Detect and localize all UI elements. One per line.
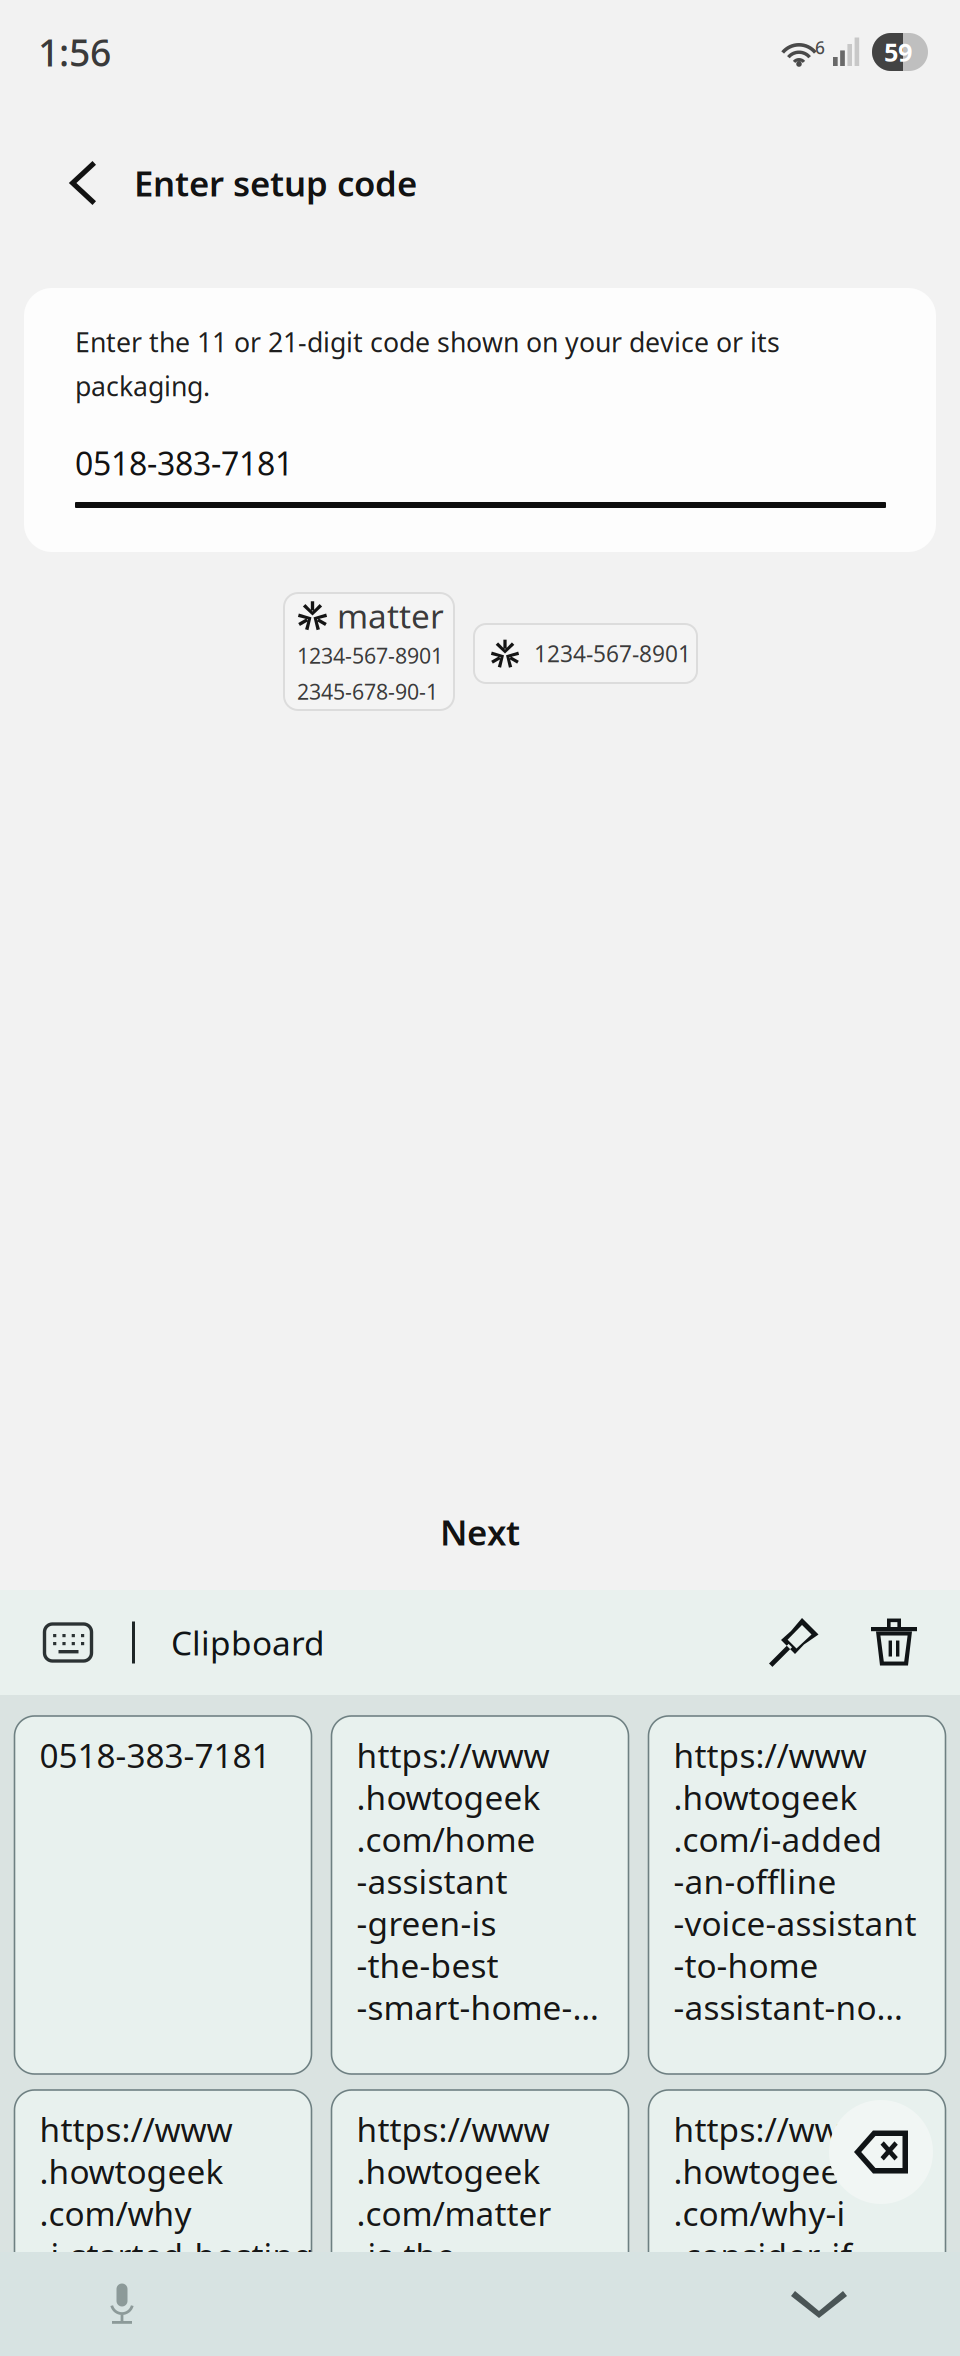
button[interactable]: 0518-383-7181 — [14, 1716, 311, 2074]
staticText: Enter the 11 or 21-digit code shown on y… — [75, 324, 780, 360]
button[interactable]: https://www — [14, 2090, 311, 2356]
staticText: -smart-home — [39, 2317, 244, 2356]
staticText: .howtogeek — [673, 2149, 857, 2193]
staticText: 0518-383-7181 — [39, 1733, 270, 1777]
button[interactable]: Back — [0, 128, 134, 238]
staticText: https://www — [673, 1733, 866, 1777]
button[interactable]: Hide keyboard — [792, 2285, 848, 2323]
staticText: .howtogeek — [673, 1775, 857, 1819]
staticText: .com/why-i — [673, 2191, 845, 2235]
staticText: .howtogeek — [39, 2149, 223, 2193]
button[interactable]: https://www — [331, 2090, 628, 2356]
staticText: 2345-678-90-1 — [297, 677, 438, 706]
button[interactable]: https://www — [648, 2090, 945, 2356]
button[interactable]: Next — [0, 1482, 960, 1582]
staticText: https://www — [39, 2107, 232, 2151]
staticText: 59 — [884, 35, 912, 69]
button[interactable]: Delete — [870, 1617, 918, 1667]
staticText: -to-home — [673, 1943, 818, 1987]
button[interactable]: https://www — [331, 1716, 628, 2074]
staticText: packaging. — [75, 368, 210, 404]
staticText: https://www — [673, 2107, 866, 2151]
staticText: .howtogeek — [356, 1775, 540, 1819]
staticText: -consider-if — [673, 2233, 851, 2277]
staticText: .com/why — [39, 2191, 191, 2235]
staticText: .com/home — [356, 1817, 535, 1861]
staticText: -green-is — [356, 1901, 496, 1945]
staticText: .com/matter — [356, 2191, 551, 2235]
staticText: Next — [440, 1509, 520, 1555]
staticText: -voice-assistant — [673, 1901, 916, 1945]
staticText: https://www — [356, 2107, 549, 2151]
staticText: 0518-383-7181 — [75, 442, 293, 484]
button[interactable]: Keyboard — [42, 1621, 94, 1663]
staticText: Clipboard — [171, 1620, 325, 1665]
staticText: -the-best — [356, 1943, 498, 1987]
staticText: 1234-567-8901 — [297, 641, 443, 670]
staticText: -i-started-hosting — [39, 2233, 314, 2277]
staticText: -assistant — [356, 1859, 507, 1903]
button[interactable]: Voice input — [104, 2282, 140, 2326]
staticText: 1234-567-8901 — [534, 638, 691, 668]
staticText: .howtogeek — [356, 2149, 540, 2193]
button[interactable]: Pin — [768, 1616, 820, 1668]
staticText: -is-the — [356, 2233, 455, 2277]
staticText: Enter setup code — [134, 160, 417, 206]
staticText: -an-offline — [673, 1859, 836, 1903]
staticText: -a-device — [673, 2275, 814, 2319]
staticText: https://www — [356, 1733, 549, 1777]
staticText: 6 — [815, 36, 825, 59]
staticText: -smart-home-… — [356, 1985, 598, 2029]
staticText: .com/i-added — [673, 1817, 882, 1861]
button[interactable]: Backspace — [829, 2100, 933, 2204]
staticText: -my-own — [39, 2275, 175, 2319]
staticText: 1:56 — [38, 27, 111, 77]
staticText: -assistant-no… — [673, 1985, 902, 2029]
staticText: matter — [337, 593, 444, 638]
button[interactable]: https://www — [648, 1716, 945, 2074]
